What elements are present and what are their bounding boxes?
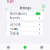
button[interactable]: General [7, 22, 43, 26]
button[interactable]: Sounds [7, 16, 43, 20]
button[interactable]: Back [4, 6, 8, 11]
button[interactable]: Home [0, 46, 17, 49]
button[interactable]: Display [7, 31, 43, 35]
staticText: 9:41 [7, 0, 14, 3]
button[interactable]: Edit [42, 6, 46, 11]
staticText: Privacy [9, 27, 17, 31]
staticText: Sounds [9, 16, 19, 20]
staticText: Notifications [9, 12, 26, 15]
button[interactable]: Profile [33, 46, 50, 49]
staticText: General [9, 23, 20, 26]
staticText: Edit [42, 5, 46, 12]
staticText: Display [9, 32, 18, 35]
button[interactable]: Search [17, 46, 33, 49]
button[interactable]: Privacy [7, 27, 43, 31]
staticText: Settings [19, 6, 30, 10]
